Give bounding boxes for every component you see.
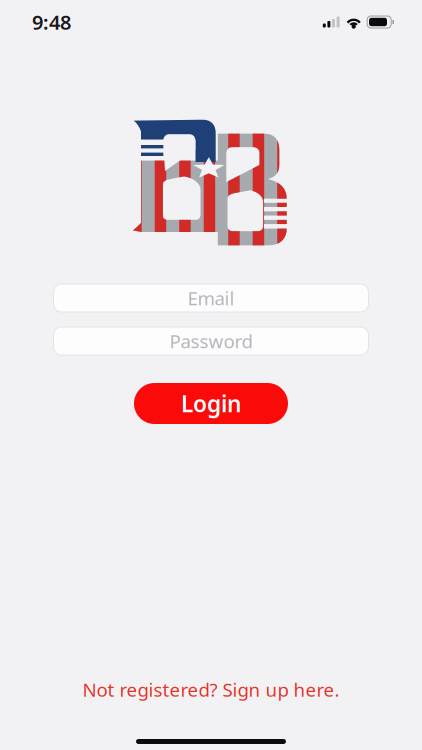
staticText: Not registered? Sign up here. (82, 677, 339, 702)
button[interactable]: Not registered? Sign up here. (82, 677, 339, 702)
staticText: Email (187, 286, 234, 310)
staticText: Login (181, 388, 241, 418)
button[interactable]: Login (134, 383, 288, 424)
staticText: 9:48 (32, 9, 71, 35)
staticText: Password (169, 329, 252, 353)
